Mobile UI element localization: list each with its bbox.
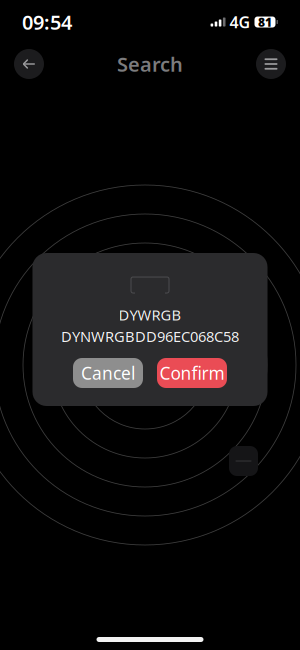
staticText: DYNWRGBDD96EC068C58 [61,326,239,346]
staticText: Cancel [81,361,135,384]
button[interactable]: Menu [256,49,286,79]
button[interactable]: Confirm [157,358,227,388]
staticText: Search [117,51,183,77]
staticText: Confirm [159,361,224,384]
button[interactable]: Cancel [73,358,143,388]
button[interactable]: Back [14,49,44,79]
staticText: 4G [229,11,250,33]
staticText: 09:54 [22,9,72,35]
staticText: 81 [258,14,272,30]
staticText: DYWRGB [118,305,181,324]
